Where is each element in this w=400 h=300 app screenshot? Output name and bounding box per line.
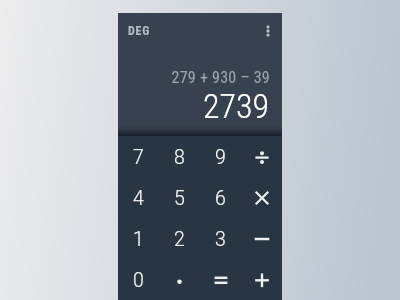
button[interactable]: 4 xyxy=(118,177,159,218)
button[interactable]: Equals xyxy=(200,259,241,300)
button[interactable]: 5 xyxy=(159,177,200,218)
staticText: 9 xyxy=(215,146,226,169)
button[interactable]: 8 xyxy=(159,136,200,177)
staticText: DEG xyxy=(128,24,151,38)
staticText: 0 xyxy=(133,269,144,292)
button[interactable]: 9 xyxy=(200,136,241,177)
button[interactable]: Subtract xyxy=(241,218,282,259)
button[interactable]: 7 xyxy=(118,136,159,177)
button[interactable]: More options xyxy=(257,20,279,42)
staticText: 8 xyxy=(174,146,185,169)
button[interactable]: 0 xyxy=(118,259,159,300)
staticText: 1 xyxy=(133,228,144,251)
staticText: 2 xyxy=(174,228,185,251)
staticText: 2739 xyxy=(202,86,269,126)
staticText: 6 xyxy=(215,187,226,210)
staticText: 4 xyxy=(133,187,144,210)
staticText: 3 xyxy=(215,228,226,251)
staticText: 7 xyxy=(133,146,144,169)
button[interactable]: Multiply xyxy=(241,177,282,218)
button[interactable]: 6 xyxy=(200,177,241,218)
button[interactable]: 1 xyxy=(118,218,159,259)
button[interactable]: Divide xyxy=(241,136,282,177)
staticText: 279 + 930 – 39 xyxy=(171,68,270,87)
button[interactable]: 3 xyxy=(200,218,241,259)
button[interactable]: Add xyxy=(241,259,282,300)
staticText: 5 xyxy=(174,187,185,210)
button[interactable]: Decimal point xyxy=(159,259,200,300)
button[interactable]: 2 xyxy=(159,218,200,259)
